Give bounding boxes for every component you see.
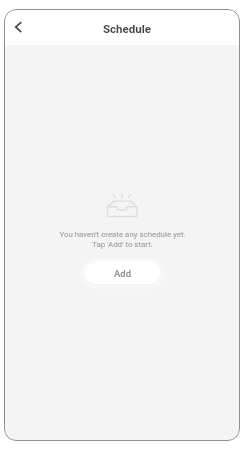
button[interactable]: Back	[9, 16, 31, 38]
button[interactable]: Add	[84, 262, 161, 284]
staticText: Add	[114, 268, 132, 279]
staticText: You haven't create any schedule yet. Tap…	[59, 230, 186, 249]
staticText: Schedule	[103, 22, 151, 35]
